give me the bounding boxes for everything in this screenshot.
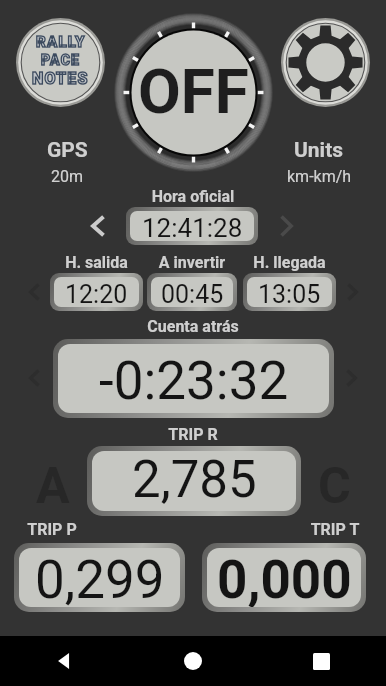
staticText: PACE: [41, 52, 81, 68]
staticText: RALLY: [36, 33, 86, 51]
button[interactable]: 0,299: [19, 548, 180, 607]
staticText: 12:20: [65, 280, 128, 307]
staticText: A: [36, 457, 70, 505]
button[interactable]: Decrease: [84, 209, 111, 243]
staticText: TRIP P: [22, 520, 82, 539]
staticText: H. llegada: [243, 253, 336, 272]
staticText: 20m: [51, 167, 84, 186]
staticText: GPS: [47, 138, 88, 163]
staticText: 00:45: [161, 280, 224, 307]
button[interactable]: Increase: [274, 209, 300, 243]
staticText: Units: [294, 138, 344, 163]
button[interactable]: Rally Pace Notes: [16, 18, 105, 107]
staticText: Cuenta atrás: [0, 317, 386, 336]
button[interactable]: 12:41:28: [130, 211, 254, 241]
staticText: A invertir: [147, 253, 237, 272]
button[interactable]: Home: [128, 636, 257, 686]
staticText: H. salida: [50, 253, 143, 272]
staticText: NOTES: [32, 69, 89, 88]
staticText: 0,299: [35, 549, 165, 607]
staticText: 0,000: [217, 549, 352, 607]
button[interactable]: 13:05: [247, 277, 332, 307]
staticText: -0:23:32: [99, 350, 289, 412]
button[interactable]: Units settings: [281, 18, 370, 107]
staticText: 12:41:28: [142, 213, 243, 241]
button[interactable]: -0:23:32: [58, 344, 329, 413]
staticText: PACE: [41, 52, 81, 68]
button[interactable]: Back: [0, 636, 128, 686]
staticText: C: [318, 457, 351, 505]
staticText: RALLY: [36, 33, 86, 51]
staticText: NOTES: [32, 69, 89, 88]
button[interactable]: Power OFF: [115, 14, 272, 171]
staticText: 13:05: [258, 280, 321, 307]
button[interactable]: 12:20: [54, 277, 139, 307]
staticText: OFF: [138, 55, 249, 128]
staticText: 2,785: [132, 451, 257, 510]
button[interactable]: Recents: [257, 636, 386, 686]
staticText: Hora oficial: [0, 187, 386, 206]
staticText: km-km/h: [287, 167, 352, 186]
button[interactable]: 00:45: [151, 277, 233, 307]
staticText: TRIP R: [0, 425, 386, 444]
button[interactable]: 2,785: [92, 451, 296, 511]
button[interactable]: 0,000: [207, 548, 361, 607]
staticText: TRIP T: [305, 520, 365, 539]
